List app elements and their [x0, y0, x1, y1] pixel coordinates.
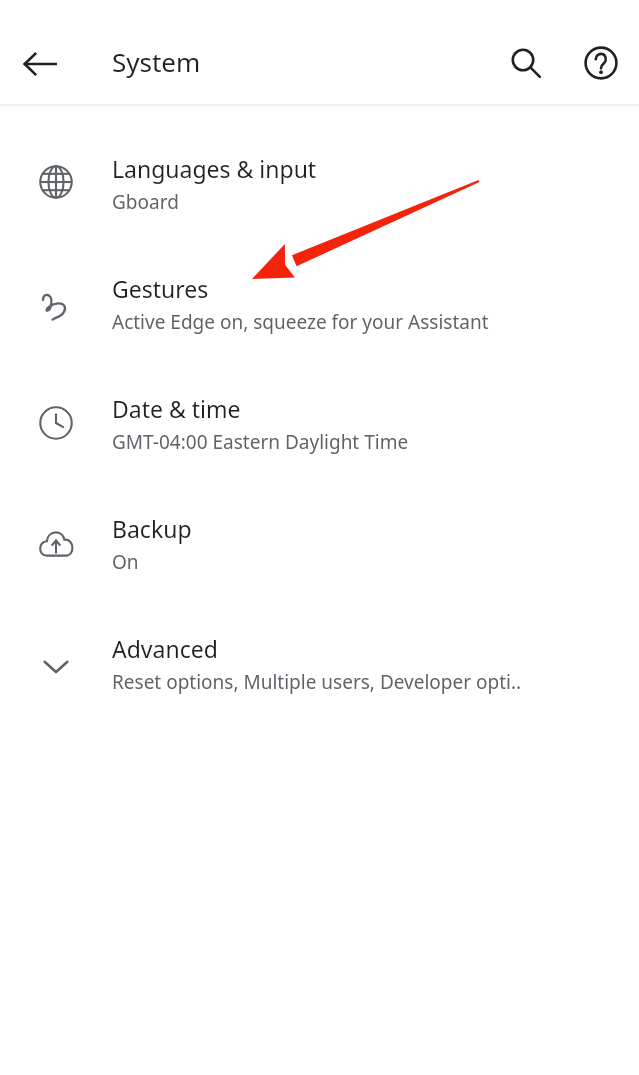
button[interactable]: Help — [569, 31, 633, 95]
button[interactable]: Advanced — [0, 604, 639, 724]
staticText: Gboard — [112, 189, 179, 215]
button[interactable]: Back — [8, 32, 72, 96]
button[interactable]: Backup — [0, 484, 639, 604]
staticText: Reset options, Multiple users, Developer… — [112, 669, 522, 695]
button[interactable]: Search — [494, 31, 558, 95]
staticText: Gestures — [112, 273, 209, 304]
staticText: GMT-04:00 Eastern Daylight Time — [112, 429, 409, 455]
staticText: Date & time — [112, 393, 241, 424]
button[interactable]: Date & time — [0, 364, 639, 484]
staticText: Backup — [112, 513, 192, 544]
staticText: Advanced — [112, 633, 218, 664]
button[interactable]: Languages & input — [0, 124, 639, 244]
staticText: Languages & input — [112, 153, 317, 184]
staticText: Active Edge on, squeeze for your Assista… — [112, 309, 489, 335]
button[interactable]: Gestures — [0, 244, 639, 364]
staticText: System — [112, 44, 201, 79]
staticText: On — [112, 549, 139, 575]
